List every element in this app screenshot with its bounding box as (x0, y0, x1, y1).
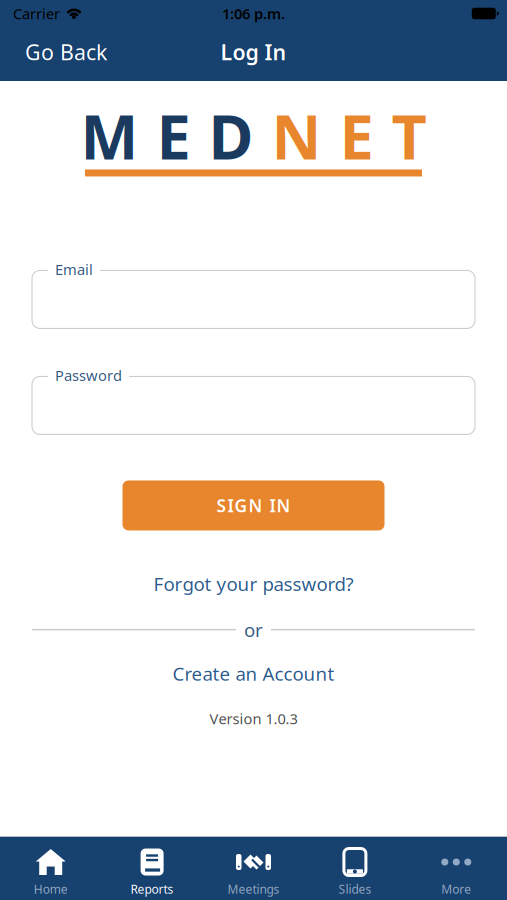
button[interactable]: More (406, 840, 507, 897)
staticText: Forgot your password? (153, 571, 353, 596)
staticText: Meetings (227, 881, 279, 897)
button[interactable]: Create an Account (172, 661, 334, 686)
staticText: More (441, 881, 471, 897)
staticText: Reports (131, 881, 174, 897)
staticText: E (339, 95, 373, 176)
staticText: Go Back (25, 38, 107, 66)
button[interactable]: Reports (101, 840, 203, 897)
staticText: D (208, 95, 253, 176)
staticText: 1:06 p.m. (222, 4, 285, 23)
button[interactable]: Forgot your password? (153, 571, 353, 596)
staticText: T (391, 95, 426, 176)
staticText: M (80, 95, 138, 176)
staticText: Password (55, 365, 122, 385)
staticText: Email (55, 259, 93, 279)
button[interactable]: Meetings (203, 840, 304, 897)
staticText: Version 1.0.3 (209, 709, 297, 728)
staticText: Log In (220, 38, 286, 66)
staticText: or (244, 617, 263, 642)
button[interactable]: Email (0, 270, 507, 328)
button[interactable]: Password (0, 376, 507, 434)
button[interactable]: SIGN IN (122, 480, 384, 530)
button[interactable]: Go Back (25, 40, 107, 68)
button[interactable]: Home (0, 840, 101, 897)
staticText: Carrier (13, 4, 60, 23)
staticText: N (271, 95, 321, 176)
staticText: Home (34, 881, 68, 897)
button[interactable]: Slides (304, 840, 406, 897)
staticText: Create an Account (172, 661, 334, 686)
staticText: Slides (338, 881, 371, 897)
staticText: SIGN IN (216, 494, 290, 517)
staticText: E (156, 95, 190, 176)
